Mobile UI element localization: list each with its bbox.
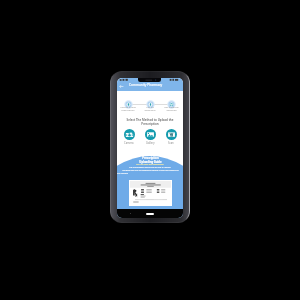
staticText: Get medicine delivered (164, 106, 179, 112)
staticText: Scan (168, 141, 174, 145)
staticText: the hospital (117, 172, 183, 175)
staticText: Upload a valid prescription (120, 106, 136, 112)
button[interactable]: Gallery (142, 129, 158, 145)
staticText: Call for assistance (144, 106, 156, 112)
button[interactable]: Camera (121, 129, 137, 145)
button[interactable]: Back (119, 84, 124, 89)
staticText: Prescription Uploading Guide (139, 156, 162, 163)
staticText: Community Pharmacy (129, 83, 163, 87)
staticText: The prescription should not be blur or u… (129, 166, 171, 169)
button[interactable]: Scan (163, 129, 179, 145)
staticText: medicine will only be dispensed against … (122, 169, 179, 172)
staticText: Select The Method to Upload the Prescrip… (117, 118, 183, 126)
staticText: Do Not Crop The Prescription (136, 163, 164, 166)
staticText: Camera (124, 141, 134, 145)
staticText: Gallery (146, 141, 155, 145)
